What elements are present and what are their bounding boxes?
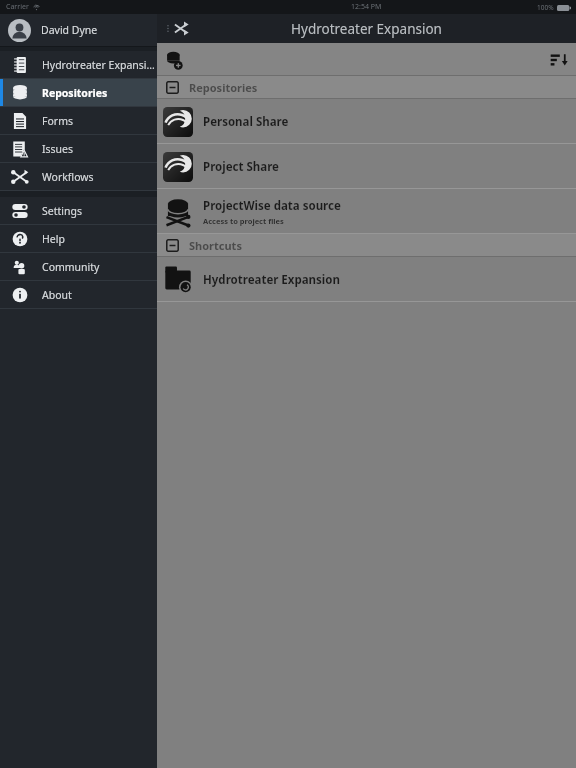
button[interactable]: Community bbox=[0, 253, 157, 280]
staticText: About bbox=[42, 288, 72, 302]
staticText: 12:54 PM bbox=[351, 2, 382, 12]
staticText: Repositories bbox=[42, 86, 108, 100]
staticText: ProjectWise data source bbox=[203, 198, 341, 214]
button[interactable]: Issues bbox=[0, 135, 157, 162]
staticText: Forms bbox=[42, 114, 73, 128]
staticText: Project Share bbox=[203, 159, 279, 175]
staticText: Repositories bbox=[189, 80, 258, 95]
staticText: Hydrotreater Expansion bbox=[42, 58, 157, 72]
staticText: Shortcuts bbox=[189, 238, 242, 253]
button[interactable]: Hydrotreater Expansion bbox=[0, 51, 157, 78]
staticText: Workflows bbox=[42, 170, 94, 184]
button[interactable]: Workflows bbox=[0, 163, 157, 190]
button[interactable]: Project Share bbox=[157, 144, 576, 189]
button[interactable]: David Dyne bbox=[0, 14, 157, 46]
staticText: Personal Share bbox=[203, 114, 289, 130]
button[interactable]: About bbox=[0, 281, 157, 308]
button[interactable]: Repositories bbox=[0, 79, 157, 106]
staticText: Access to project files bbox=[203, 216, 284, 226]
staticText: Hydrotreater Expansion bbox=[203, 272, 340, 288]
staticText: Community bbox=[42, 260, 100, 274]
button[interactable]: Sort bbox=[546, 47, 572, 73]
button[interactable]: Help bbox=[0, 225, 157, 252]
staticText: David Dyne bbox=[41, 23, 98, 37]
button[interactable]: Hydrotreater Expansion bbox=[157, 257, 576, 302]
button[interactable]: ProjectWise data source bbox=[157, 189, 576, 234]
staticText: Settings bbox=[42, 204, 82, 218]
button[interactable]: Settings bbox=[0, 197, 157, 224]
staticText: Help bbox=[42, 232, 65, 246]
button[interactable]: Menu bbox=[161, 14, 194, 43]
button[interactable]: Forms bbox=[0, 107, 157, 134]
staticText: Carrier bbox=[6, 2, 29, 12]
staticText: 100% bbox=[537, 3, 554, 12]
staticText: Hydrotreater Expansion bbox=[291, 20, 442, 38]
staticText: Issues bbox=[42, 142, 74, 156]
button[interactable]: Personal Share bbox=[157, 99, 576, 144]
button[interactable]: Add data source bbox=[161, 47, 187, 73]
